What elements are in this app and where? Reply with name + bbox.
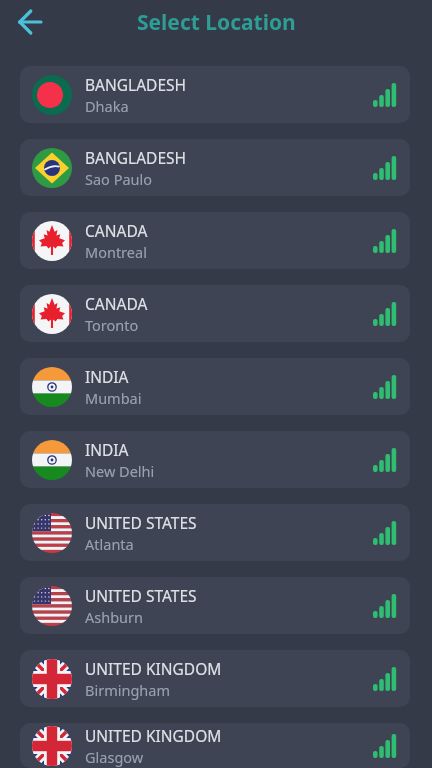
staticText: Select Location [137, 8, 296, 37]
button[interactable]: UNITED STATES [20, 577, 410, 634]
button[interactable]: INDIA [20, 431, 410, 488]
button[interactable]: CANADA [20, 285, 410, 342]
staticText: INDIA [85, 439, 129, 460]
staticText: Glasgow [85, 747, 144, 767]
staticText: UNITED KINGDOM [85, 725, 222, 746]
staticText: Atlanta [85, 534, 134, 554]
staticText: CANADA [85, 220, 148, 241]
staticText: UNITED KINGDOM [85, 658, 222, 679]
staticText: UNITED STATES [85, 512, 197, 533]
button[interactable]: INDIA [20, 358, 410, 415]
staticText: CANADA [85, 293, 148, 314]
button[interactable]: BANGLADESH [20, 139, 410, 196]
staticText: New Delhi [85, 461, 155, 481]
staticText: Mumbai [85, 388, 142, 408]
staticText: Ashburn [85, 607, 143, 627]
button[interactable]: BANGLADESH [20, 66, 410, 123]
staticText: INDIA [85, 366, 129, 387]
staticText: Dhaka [85, 96, 129, 116]
button[interactable]: UNITED KINGDOM [20, 650, 410, 707]
button[interactable] [10, 2, 50, 42]
button[interactable]: CANADA [20, 212, 410, 269]
staticText: Montreal [85, 242, 147, 262]
staticText: BANGLADESH [85, 74, 186, 95]
staticText: Birmingham [85, 680, 170, 700]
button[interactable]: UNITED STATES [20, 504, 410, 561]
staticText: UNITED STATES [85, 585, 197, 606]
staticText: Sao Paulo [85, 169, 153, 189]
staticText: BANGLADESH [85, 147, 186, 168]
button[interactable]: UNITED KINGDOM [20, 723, 410, 768]
staticText: Toronto [85, 315, 139, 335]
